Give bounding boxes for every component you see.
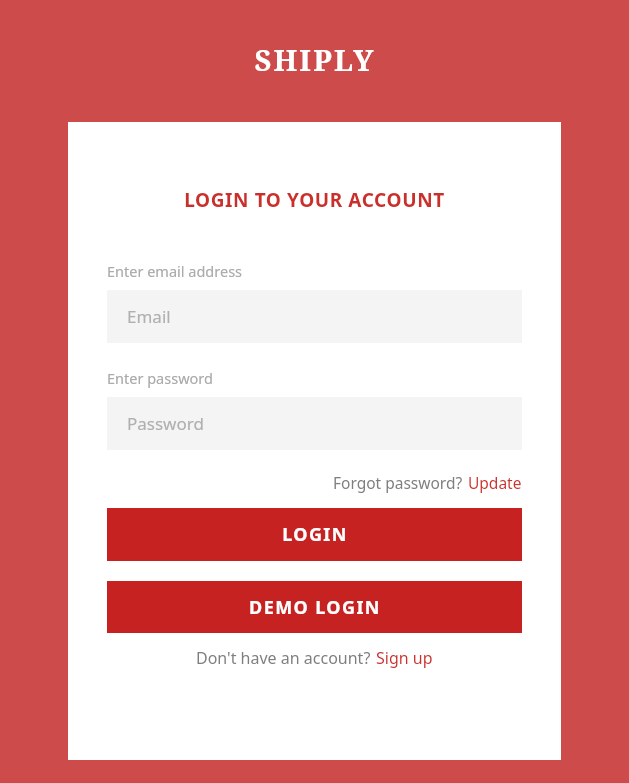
staticText: LOGIN TO YOUR ACCOUNT — [184, 187, 445, 213]
staticText: SHIPLY — [254, 40, 376, 79]
button[interactable]: LOGIN — [107, 508, 522, 561]
staticText: Sign up — [376, 647, 433, 669]
button[interactable]: Update — [468, 472, 522, 493]
staticText: DEMO LOGIN — [249, 595, 381, 620]
button[interactable]: Email — [107, 290, 522, 343]
staticText: LOGIN — [282, 522, 348, 547]
staticText: Forgot password? — [333, 472, 463, 493]
staticText: Don't have an account? — [196, 647, 371, 669]
staticText: Update — [468, 472, 522, 493]
staticText: Enter email address — [107, 261, 243, 281]
button[interactable]: Password — [107, 397, 522, 450]
button[interactable]: Sign up — [376, 647, 433, 669]
staticText: Enter password — [107, 368, 213, 388]
button[interactable]: DEMO LOGIN — [107, 581, 522, 633]
staticText: Password — [127, 412, 204, 435]
staticText: Email — [127, 305, 171, 328]
